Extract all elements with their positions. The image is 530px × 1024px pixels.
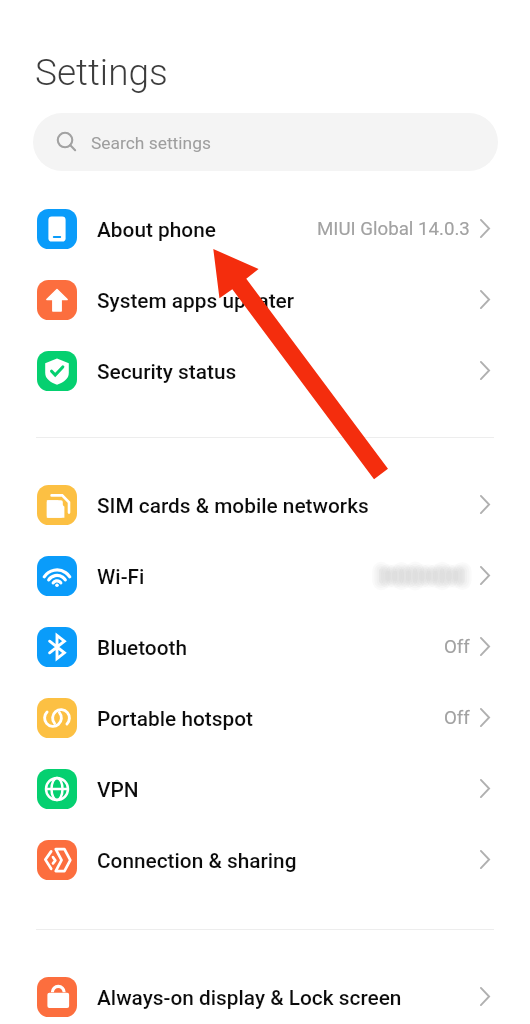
staticText: About phone — [97, 218, 216, 242]
staticText: Search settings — [91, 133, 211, 153]
staticText: VPN — [97, 778, 139, 802]
staticText: Wi-Fi — [97, 565, 145, 589]
staticText: Portable hotspot — [97, 707, 253, 731]
staticText: Security status — [97, 360, 237, 384]
button[interactable]: Wi-Fi — [0, 540, 530, 611]
button[interactable]: Always-on display & Lock screen — [0, 961, 530, 1024]
button[interactable]: Connection & sharing — [0, 824, 530, 895]
button[interactable]: System apps updater — [0, 264, 530, 335]
staticText: Bluetooth — [97, 636, 187, 660]
staticText: Off — [444, 707, 470, 729]
staticText: Settings — [35, 51, 168, 94]
button[interactable]: Security status — [0, 335, 530, 406]
staticText: System apps updater — [97, 289, 295, 313]
button[interactable]: SIM cards & mobile networks — [0, 469, 530, 540]
button[interactable]: About phone — [0, 193, 530, 264]
staticText: Connection & sharing — [97, 849, 297, 873]
button[interactable]: Portable hotspot — [0, 682, 530, 753]
staticText: Always-on display & Lock screen — [97, 986, 402, 1010]
button[interactable]: Bluetooth — [0, 611, 530, 682]
staticText: Off — [444, 636, 470, 658]
button[interactable]: VPN — [0, 753, 530, 824]
staticText: SIM cards & mobile networks — [97, 494, 369, 518]
staticText: MIUI Global 14.0.3 — [317, 218, 470, 240]
button[interactable]: Search settings — [33, 113, 498, 171]
